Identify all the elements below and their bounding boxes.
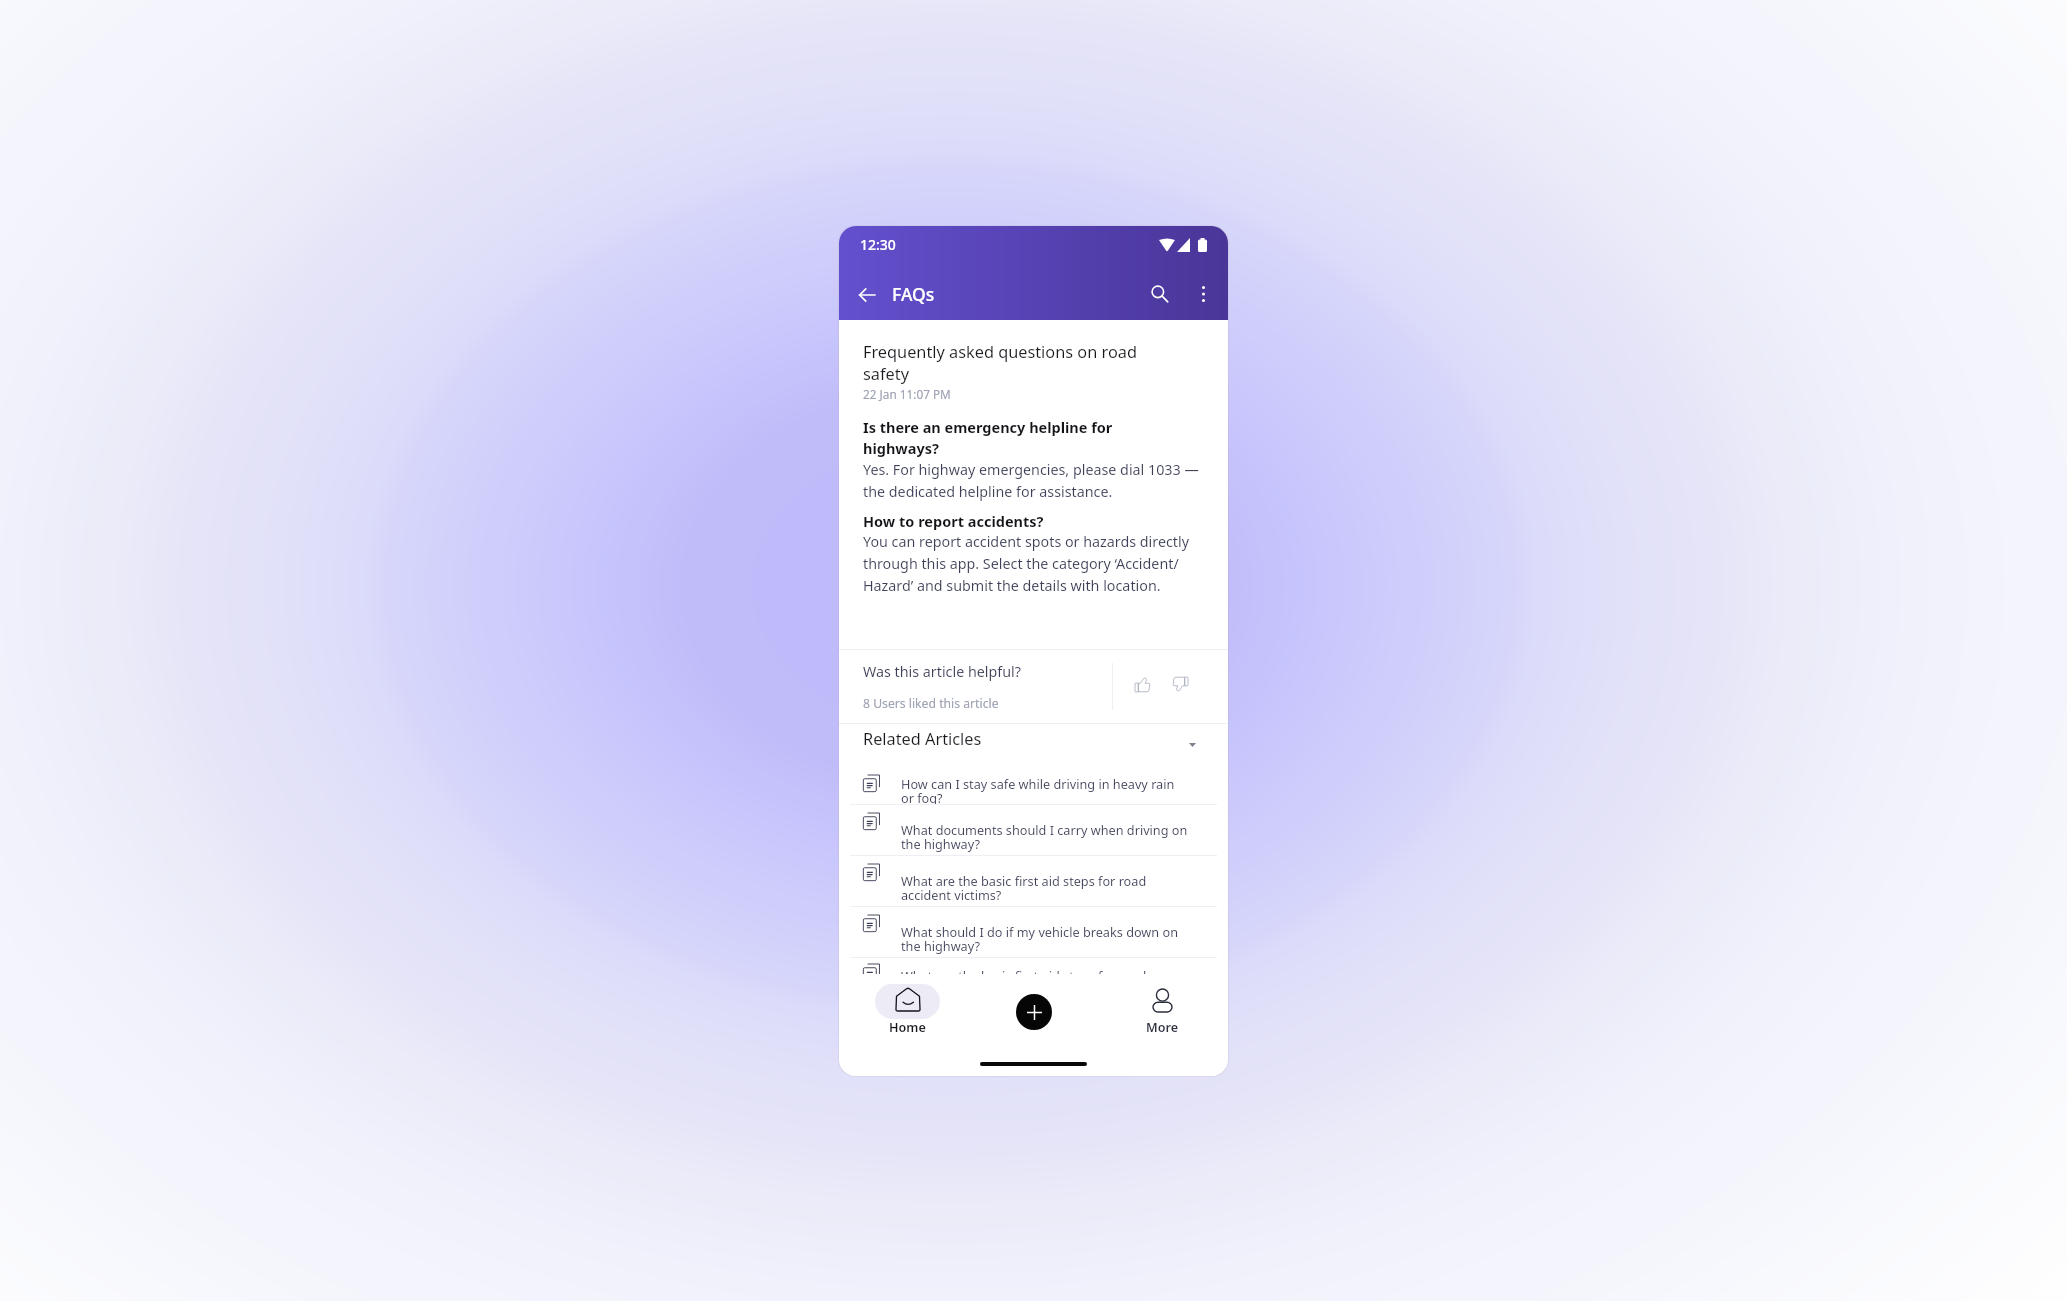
button[interactable]: What are the basic first aid steps for r… [839,856,1228,906]
staticText: Frequently asked questions on road safet… [863,341,1137,385]
staticText: Yes. For highway emergencies, please dia… [863,460,1199,501]
button[interactable]: More options [1188,279,1218,309]
staticText: Related Articles [863,728,982,750]
staticText: What should I do if my vehicle breaks do… [901,923,1178,955]
button[interactable]: How can I stay safe while driving in hea… [839,754,1228,804]
button[interactable]: Add [1016,994,1052,1030]
staticText: You can report accident spots or hazards… [863,532,1189,595]
staticText: Home [889,1019,926,1036]
button[interactable]: Like [1125,670,1159,704]
staticText: What documents should I carry when drivi… [901,821,1188,853]
staticText: What are the basic first aid steps for r… [901,967,1147,974]
button[interactable]: More [1134,984,1190,1036]
staticText: More [1146,1019,1179,1036]
button[interactable]: Back [849,277,884,312]
staticText: Is there an emergency helpline for highw… [863,417,1113,458]
button[interactable]: What documents should I carry when drivi… [839,805,1228,855]
staticText: Was this article helpful? [863,662,1021,681]
button[interactable]: Search [1142,276,1178,312]
button[interactable]: Home [875,984,940,1036]
staticText: 22 Jan 11:07 PM [863,386,951,402]
staticText: 8 Users liked this article [863,695,999,712]
staticText: What are the basic first aid steps for r… [901,872,1147,904]
button[interactable]: Related Articles [839,724,1228,754]
button[interactable]: What are the basic first aid steps for r… [839,958,1228,974]
button[interactable]: What should I do if my vehicle breaks do… [839,907,1228,957]
staticText: 12:30 [860,235,896,254]
staticText: How can I stay safe while driving in hea… [901,775,1175,804]
staticText: FAQs [892,282,935,306]
staticText: How to report accidents? [863,511,1044,531]
button[interactable]: Dislike [1163,670,1197,704]
